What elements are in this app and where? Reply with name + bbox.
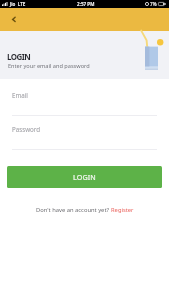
- staticText: Email: [12, 91, 28, 99]
- staticText: Register: [111, 206, 134, 214]
- staticText: 2:57 PM: [77, 1, 95, 7]
- button[interactable]: Password: [12, 122, 157, 150]
- staticText: Enter your email and password: [8, 62, 90, 70]
- staticText: Don't have an account yet?: [36, 206, 111, 214]
- staticText: LOGIN: [73, 172, 96, 182]
- button[interactable]: Email: [12, 88, 157, 116]
- button[interactable]: Register: [111, 206, 134, 214]
- staticText: 7%: [150, 1, 157, 7]
- staticText: Password: [12, 125, 40, 133]
- staticText: LOGIN: [7, 51, 31, 62]
- staticText: Jio LTE: [10, 1, 26, 7]
- button[interactable]: LOGIN: [7, 166, 162, 188]
- button[interactable]: Back: [4, 10, 22, 28]
